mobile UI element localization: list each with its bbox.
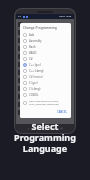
staticText: C++ (gcc) <box>29 63 41 67</box>
button[interactable]: Back <box>25 125 32 132</box>
button[interactable]: C (gcc) <box>23 80 68 86</box>
staticText: Ada <box>29 33 35 37</box>
staticText: Web Programming (HTML5, CSS3, JavaScript… <box>29 100 59 106</box>
button[interactable]: Recents <box>58 125 65 132</box>
button[interactable]: C (clang) <box>23 86 68 92</box>
staticText: C++ (clang) <box>29 69 44 73</box>
staticText: 1:1 <box>18 15 22 18</box>
staticText: Bash <box>29 45 36 49</box>
button[interactable]: BASIC <box>23 50 68 56</box>
button[interactable]: Assembly <box>23 38 68 44</box>
button[interactable]: Ada <box>23 32 68 38</box>
button[interactable]: CANCEL <box>56 109 68 115</box>
staticText: Select Programming Language <box>4 120 86 154</box>
button[interactable]: Bash <box>23 44 68 50</box>
staticText: C (clang) <box>29 87 41 91</box>
staticText: COBOL <box>29 93 39 97</box>
staticText: CANCEL <box>57 110 67 114</box>
button[interactable]: Web Programming (HTML5, CSS3, JavaScript… <box>23 98 68 107</box>
staticText: BASIC <box>29 51 37 55</box>
button[interactable]: C++ (gcc) <box>23 62 68 68</box>
button[interactable]: C# (mono) <box>23 74 68 80</box>
staticText: Assembly <box>29 39 42 43</box>
button[interactable]: Home <box>42 125 49 132</box>
staticText: 100 % 12:45 <box>59 15 72 18</box>
staticText: C (gcc) <box>29 81 38 85</box>
button[interactable]: C++ (clang) <box>23 68 68 74</box>
staticText: C# <box>29 57 33 61</box>
button[interactable]: C# <box>23 56 68 62</box>
button[interactable]: COBOL <box>23 92 68 98</box>
staticText: C# (mono) <box>29 75 43 79</box>
staticText: Change Programming Language <box>23 26 68 30</box>
